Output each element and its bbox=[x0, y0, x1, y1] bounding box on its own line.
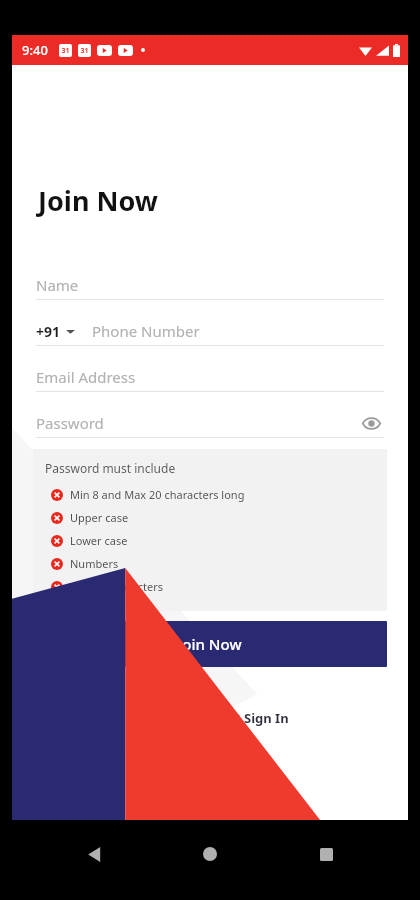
staticText: Upper case bbox=[70, 510, 129, 525]
button[interactable]: Email Address bbox=[36, 362, 384, 392]
button[interactable]: Name bbox=[36, 270, 384, 300]
button[interactable]: Back bbox=[72, 832, 116, 876]
button[interactable]: Home bbox=[188, 832, 232, 876]
button[interactable]: Join Now bbox=[33, 621, 387, 667]
staticText: Min 8 and Max 20 characters long bbox=[70, 487, 245, 502]
staticText: Numbers bbox=[70, 556, 119, 571]
button[interactable]: Have an Account? bbox=[12, 709, 408, 727]
button[interactable]: Show password bbox=[358, 410, 384, 436]
staticText: Name bbox=[36, 275, 79, 295]
button[interactable]: +91 bbox=[36, 322, 75, 341]
staticText: Phone Number bbox=[92, 321, 200, 341]
staticText: Special characters bbox=[70, 579, 164, 594]
staticText: Lower case bbox=[70, 533, 128, 548]
button[interactable]: Recent apps bbox=[304, 832, 348, 876]
button[interactable]: Password bbox=[36, 408, 384, 438]
staticText: 9:40 bbox=[22, 41, 48, 59]
staticText: 31 bbox=[80, 46, 89, 56]
staticText: +91 bbox=[36, 322, 61, 341]
button[interactable]: +91 bbox=[36, 316, 384, 346]
staticText: Join Now bbox=[38, 182, 158, 219]
staticText: Join Now bbox=[178, 634, 242, 654]
staticText: Password bbox=[36, 413, 104, 433]
staticText: Password must include bbox=[45, 460, 176, 476]
staticText: Email Address bbox=[36, 367, 136, 387]
staticText: Have an Account? bbox=[132, 709, 244, 727]
staticText: 31 bbox=[61, 46, 70, 56]
staticText: Sign In bbox=[244, 709, 289, 727]
